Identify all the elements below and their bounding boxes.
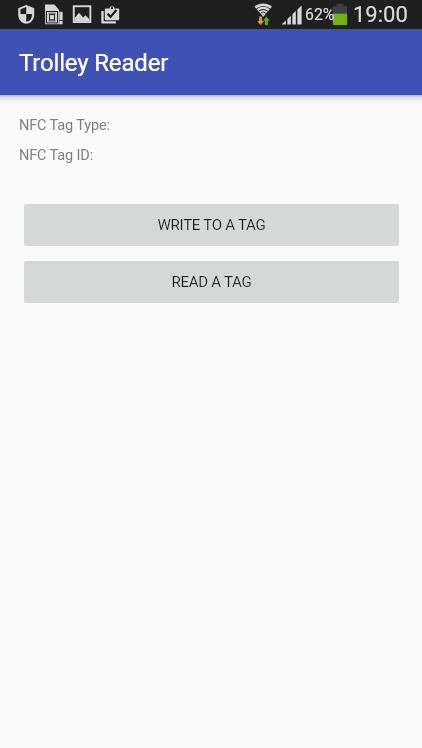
staticText: READ A TAG [171, 273, 252, 291]
staticText: Trolley Reader [19, 49, 169, 77]
staticText: WRITE TO A TAG [157, 216, 266, 234]
staticText: NFC Tag Type: [19, 117, 110, 134]
staticText: NFC Tag ID: [19, 147, 94, 164]
staticText: 19:00 [353, 2, 408, 28]
staticText: 62% [305, 5, 335, 24]
button[interactable]: WRITE TO A TAG [24, 204, 399, 246]
button[interactable]: READ A TAG [24, 261, 399, 303]
